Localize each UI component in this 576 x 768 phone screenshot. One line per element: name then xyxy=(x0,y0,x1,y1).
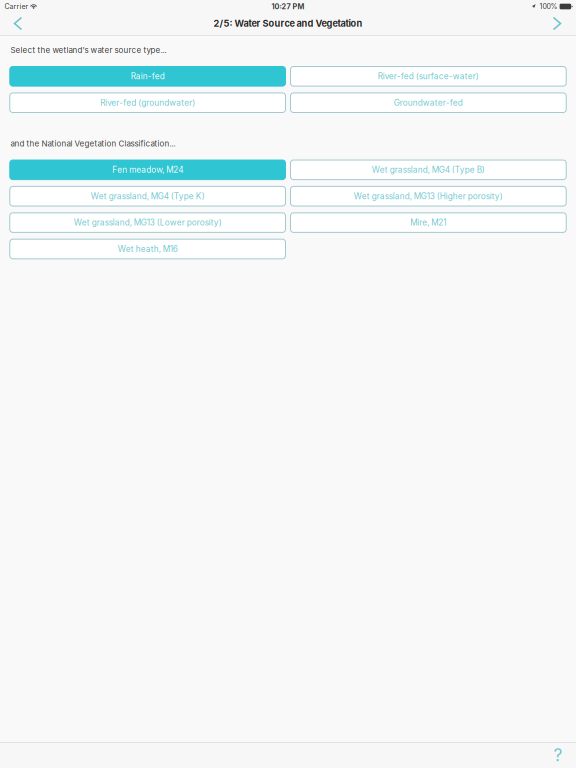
button[interactable]: River-fed (groundwater) xyxy=(10,93,285,112)
button[interactable]: Wet grassland, MG13 (Lower porosity) xyxy=(10,213,285,232)
button[interactable]: River-fed (surface-water) xyxy=(290,66,566,86)
button[interactable]: Back xyxy=(5,13,31,34)
button[interactable]: Wet grassland, MG4 (Type K) xyxy=(10,186,285,206)
staticText: Wet grassland, MG4 (Type K) xyxy=(91,191,205,201)
button[interactable]: Rain-fed xyxy=(10,66,285,86)
staticText: River-fed (surface-water) xyxy=(378,71,479,81)
staticText: and the National Vegetation Classificati… xyxy=(10,139,175,148)
staticText: River-fed (groundwater) xyxy=(100,98,195,108)
staticText: Groundwater-fed xyxy=(394,98,463,108)
staticText: Rain-fed xyxy=(131,71,165,81)
staticText: Wet grassland, MG13 (Lower porosity) xyxy=(74,218,222,228)
staticText: ? xyxy=(553,744,562,765)
button[interactable]: Fen meadow, M24 xyxy=(10,160,285,180)
button[interactable]: Next xyxy=(544,13,570,34)
staticText: Mire, M21 xyxy=(410,218,446,228)
button[interactable]: Wet heath, M16 xyxy=(10,239,285,259)
staticText: Fen meadow, M24 xyxy=(112,165,183,175)
staticText: Select the wetland's water source type..… xyxy=(10,45,166,55)
button[interactable]: Wet grassland, MG13 (Higher porosity) xyxy=(290,186,566,206)
staticText: 10:27 PM xyxy=(271,2,304,11)
button[interactable]: Groundwater-fed xyxy=(290,93,566,112)
staticText: 100% xyxy=(540,2,558,11)
button[interactable]: Help xyxy=(540,742,576,768)
staticText: Wet heath, M16 xyxy=(118,244,178,254)
staticText: Wet grassland, MG4 (Type B) xyxy=(372,165,485,175)
staticText: Wet grassland, MG13 (Higher porosity) xyxy=(354,191,503,201)
button[interactable]: Mire, M21 xyxy=(290,213,566,232)
staticText: Carrier xyxy=(4,2,28,11)
button[interactable]: Wet grassland, MG4 (Type B) xyxy=(290,160,566,180)
staticText: 2/5: Water Source and Vegetation xyxy=(213,18,362,29)
